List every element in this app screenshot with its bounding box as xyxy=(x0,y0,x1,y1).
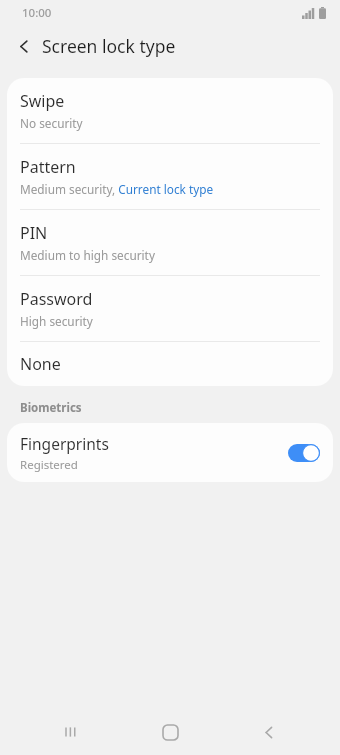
button[interactable]: Back xyxy=(242,709,296,755)
button[interactable]: None xyxy=(7,342,333,386)
button[interactable]: Home xyxy=(143,709,197,755)
staticText: Swipe xyxy=(20,90,65,112)
button[interactable]: Fingerprints toggle xyxy=(286,441,322,465)
button[interactable]: Recents xyxy=(45,709,99,755)
staticText: PIN xyxy=(20,222,48,244)
button[interactable]: PIN xyxy=(7,210,333,275)
staticText: No security xyxy=(20,115,83,131)
staticText: Medium to high security xyxy=(20,247,155,263)
staticText: Registered xyxy=(20,457,78,473)
staticText: High security xyxy=(20,313,93,329)
button[interactable]: Pattern xyxy=(7,144,333,209)
staticText: Medium security, Current lock type xyxy=(20,181,214,197)
button[interactable]: Password xyxy=(7,276,333,341)
staticText: Pattern xyxy=(20,156,76,178)
button[interactable]: Back xyxy=(10,32,38,60)
staticText: Fingerprints xyxy=(20,433,109,454)
staticText: None xyxy=(20,353,61,375)
staticText: Biometrics xyxy=(20,400,82,416)
staticText: Screen lock type xyxy=(42,34,176,58)
staticText: Password xyxy=(20,288,93,310)
staticText: 10:00 xyxy=(22,5,52,21)
button[interactable]: Swipe xyxy=(7,78,333,143)
button[interactable]: Fingerprints xyxy=(7,423,333,482)
